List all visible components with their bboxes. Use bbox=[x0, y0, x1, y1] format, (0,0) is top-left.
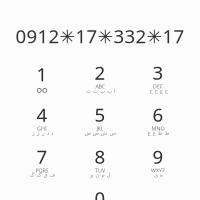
staticText: PQRS bbox=[35, 167, 48, 174]
staticText: GHI bbox=[37, 125, 47, 132]
staticText: 9 bbox=[152, 144, 163, 169]
staticText: JKL bbox=[96, 125, 103, 132]
button[interactable]: 7 bbox=[13, 140, 71, 182]
staticText: 2 bbox=[94, 60, 105, 85]
staticText: ف ق ک گ bbox=[29, 172, 55, 178]
button[interactable]: 1, voicemail bbox=[13, 56, 71, 98]
staticText: MNO bbox=[151, 125, 164, 132]
staticText: د ذ ر ز ژ bbox=[31, 130, 52, 136]
staticText: 5 bbox=[94, 102, 105, 127]
button[interactable]: 0912✳17✳332✳17 bbox=[0, 21, 200, 51]
button[interactable]: 6 bbox=[129, 98, 187, 140]
staticText: 4 bbox=[36, 102, 47, 127]
staticText: ABC bbox=[95, 83, 104, 90]
staticText: 6 bbox=[152, 102, 163, 127]
staticText: 8 bbox=[94, 144, 105, 169]
button[interactable]: 3 bbox=[129, 56, 187, 98]
staticText: 0 bbox=[94, 185, 105, 200]
staticText: 1 bbox=[36, 62, 47, 86]
button[interactable]: 5 bbox=[71, 98, 129, 140]
staticText: 7 bbox=[36, 144, 47, 169]
button[interactable]: 9 bbox=[129, 140, 187, 182]
staticText: DEF bbox=[153, 83, 163, 90]
button[interactable]: 4 bbox=[13, 98, 71, 140]
staticText: ل م ن و bbox=[90, 172, 110, 178]
staticText: WXYZ bbox=[151, 167, 165, 174]
staticText: س ش ص ض bbox=[84, 130, 116, 136]
staticText: ج چ ح خ bbox=[149, 88, 167, 94]
staticText: 3 bbox=[152, 60, 163, 85]
staticText: 0912✳17✳332✳17 bbox=[15, 24, 184, 48]
staticText: ط ظ ع غ bbox=[147, 130, 169, 136]
button[interactable]: 2 bbox=[71, 56, 129, 98]
button[interactable]: 8 bbox=[71, 140, 129, 182]
button[interactable]: 0 bbox=[71, 182, 129, 200]
staticText: ا ب پ ت ث bbox=[85, 88, 114, 94]
staticText: ه ی bbox=[153, 172, 162, 178]
staticText: TUV bbox=[95, 167, 105, 174]
